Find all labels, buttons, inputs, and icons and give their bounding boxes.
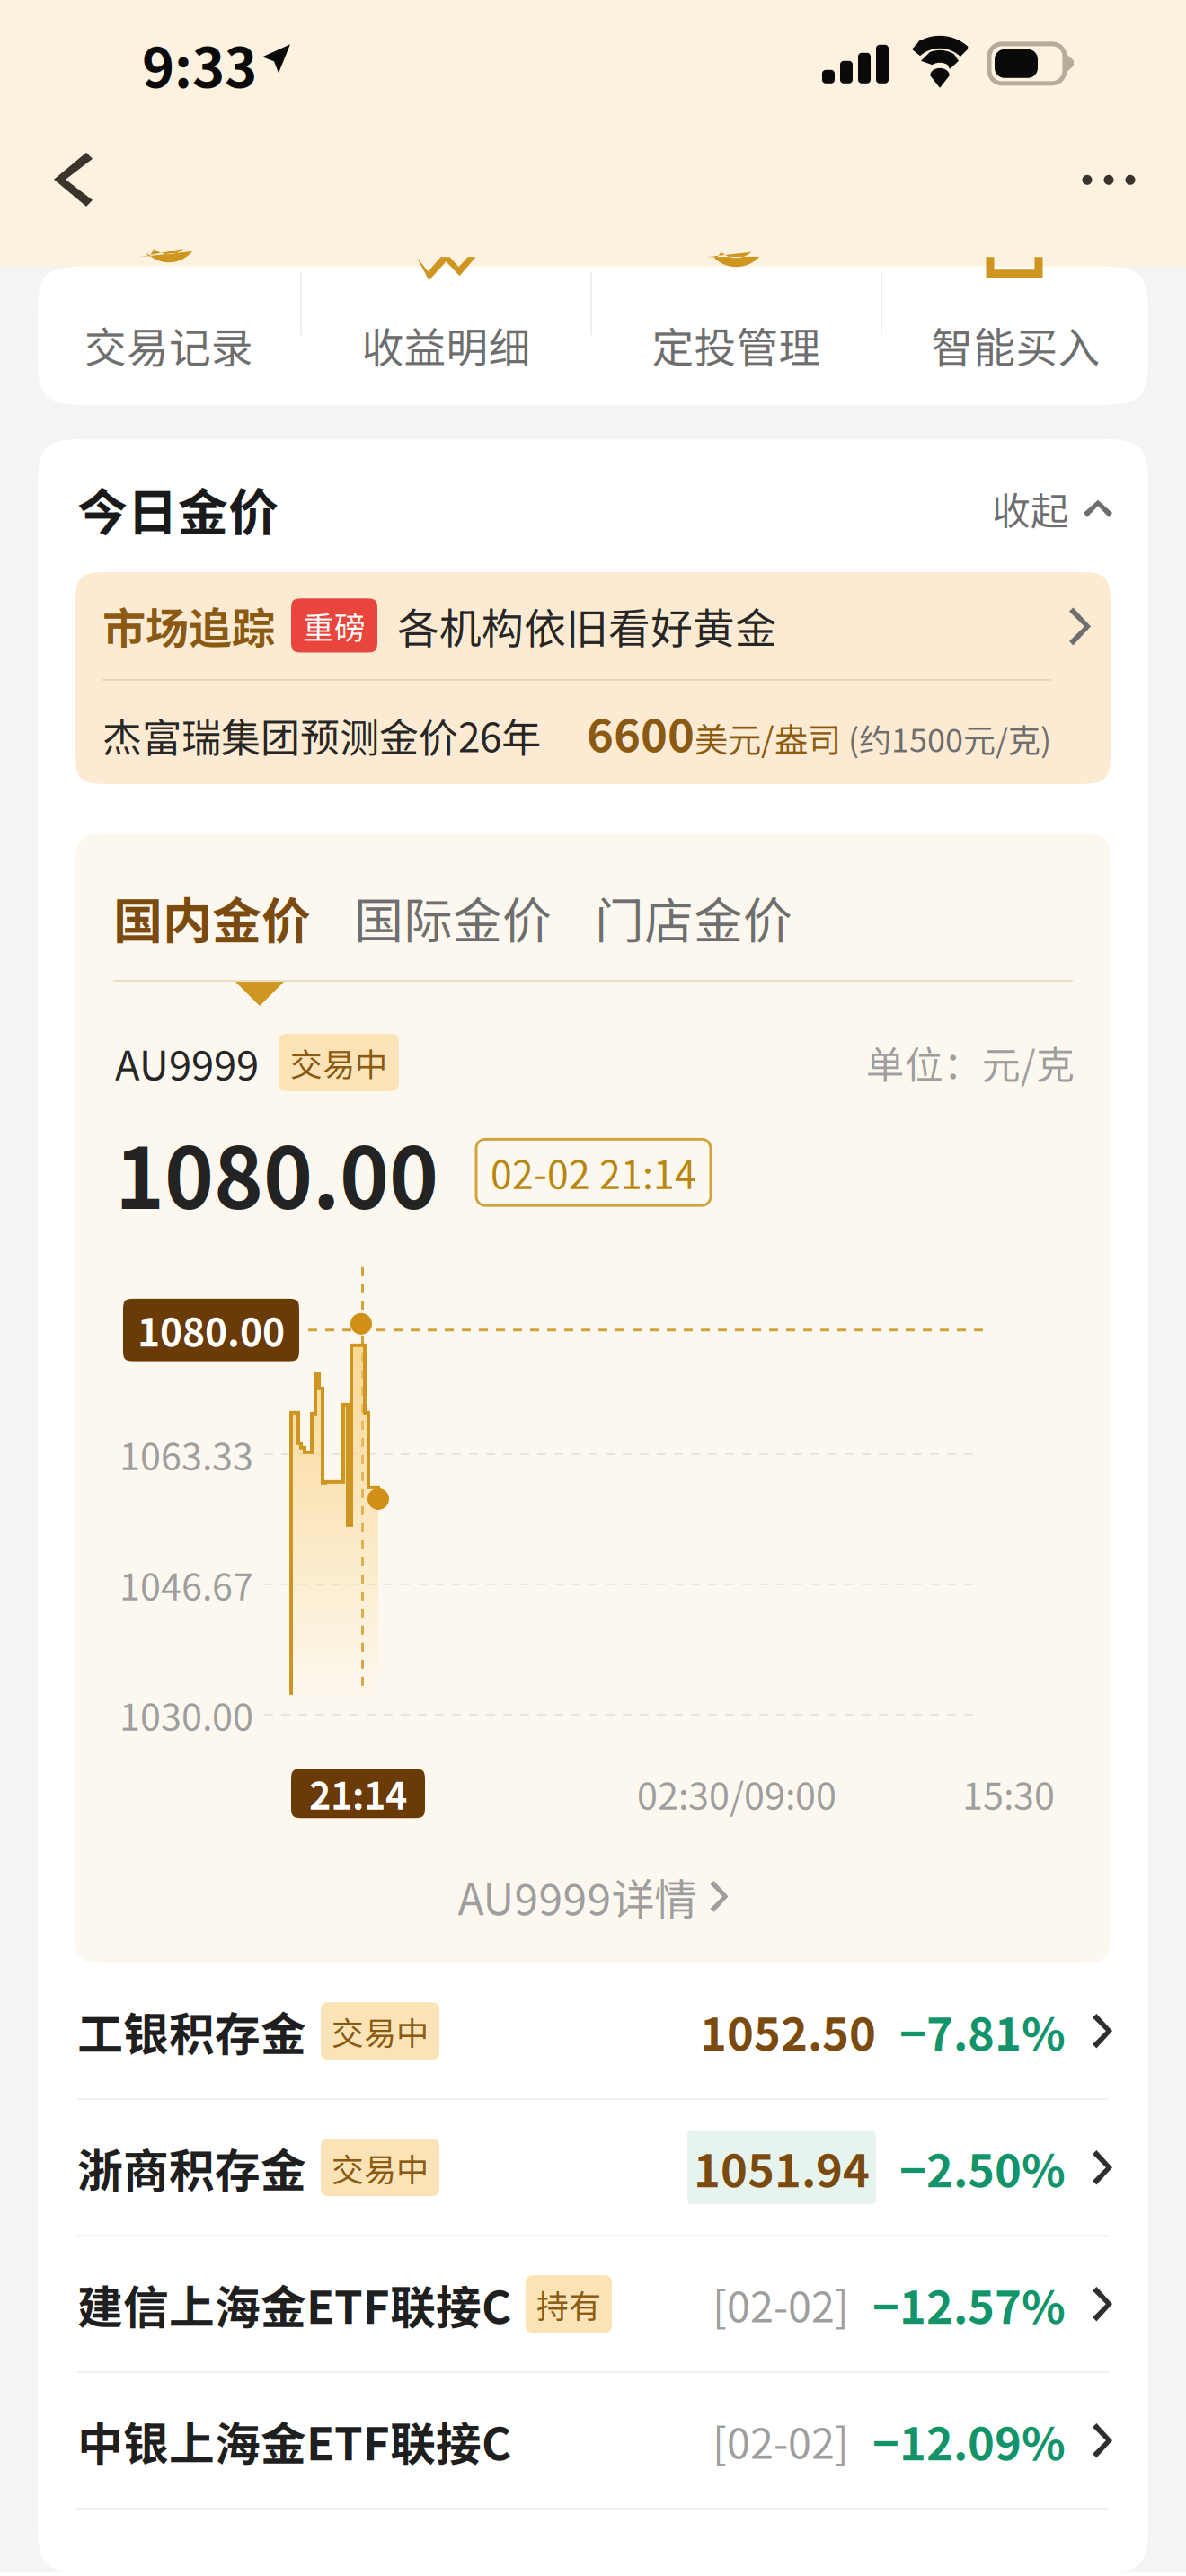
- staticText: 收益明细: [362, 315, 531, 375]
- staticText: 1063.33: [119, 1427, 253, 1481]
- staticText: 15:30: [962, 1767, 1055, 1820]
- staticText: −2.50%: [899, 2135, 1066, 2200]
- button[interactable]: 市场追踪: [75, 572, 1111, 784]
- button[interactable]: 智能买入: [882, 257, 1149, 375]
- staticText: 交易中: [332, 2008, 429, 2054]
- staticText: 收起: [992, 481, 1069, 536]
- staticText: 9:33: [142, 24, 257, 103]
- staticText: [02-02]: [712, 2274, 849, 2334]
- staticText: 1080.00: [115, 1112, 438, 1233]
- staticText: 各机构依旧看好黄金: [397, 595, 777, 656]
- staticText: [02-02]: [712, 2410, 849, 2471]
- staticText: 1030.00: [119, 1688, 253, 1741]
- button[interactable]: AU9999详情: [75, 1820, 1111, 1964]
- staticText: 1052.50: [700, 1998, 876, 2064]
- button[interactable]: 建信上海金ETF联接C: [38, 2237, 1148, 2371]
- button[interactable]: 定投管理: [592, 257, 881, 375]
- staticText: 今日金价: [77, 472, 279, 545]
- staticText: (约1500元/克): [841, 715, 1051, 761]
- staticText: 智能买入: [931, 315, 1100, 375]
- staticText: −12.09%: [872, 2408, 1066, 2474]
- staticText: 交易中: [290, 1039, 387, 1086]
- staticText: 交易记录: [84, 315, 253, 375]
- staticText: 持有: [536, 2281, 601, 2327]
- staticText: 门店金价: [595, 882, 792, 953]
- staticText: 1080.00: [137, 1302, 285, 1358]
- button[interactable]: More: [1046, 131, 1186, 229]
- staticText: 重磅: [303, 603, 366, 648]
- button[interactable]: 国内金价: [113, 882, 332, 953]
- button[interactable]: 收起: [992, 481, 1112, 536]
- staticText: 02-02 21:14: [491, 1145, 696, 1200]
- staticText: 02:30/09:00: [637, 1767, 836, 1820]
- staticText: AU9999详情: [458, 1865, 698, 1928]
- staticText: 交易中: [332, 2144, 429, 2191]
- staticText: 6600: [587, 699, 695, 765]
- staticText: −12.57%: [872, 2271, 1066, 2337]
- staticText: 国内金价: [113, 882, 311, 953]
- button[interactable]: 浙商积存金: [38, 2100, 1148, 2235]
- staticText: 单位：元/克: [866, 1035, 1075, 1090]
- button[interactable]: 中银上海金ETF联接C: [38, 2373, 1148, 2508]
- staticText: AU9999: [115, 1033, 259, 1092]
- staticText: 21:14: [309, 1767, 407, 1820]
- staticText: 市场追踪: [102, 594, 275, 657]
- staticText: 定投管理: [652, 315, 821, 375]
- staticText: 1051.94: [694, 2135, 870, 2200]
- button[interactable]: Back: [0, 131, 140, 229]
- button[interactable]: 交易记录: [38, 257, 300, 375]
- staticText: 建信上海金ETF联接C: [77, 2271, 511, 2337]
- button[interactable]: 国际金价: [332, 882, 573, 953]
- staticText: 杰富瑞集团预测金价26年: [102, 706, 541, 764]
- staticText: 中银上海金ETF联接C: [77, 2408, 511, 2474]
- staticText: 1046.67: [119, 1557, 253, 1611]
- staticText: −7.81%: [899, 1998, 1066, 2064]
- staticText: 浙商积存金: [77, 2135, 306, 2200]
- button[interactable]: 门店金价: [573, 882, 814, 953]
- staticText: 美元/盎司: [695, 713, 841, 762]
- staticText: 国际金价: [354, 882, 552, 953]
- button[interactable]: 工银积存金: [38, 1964, 1148, 2098]
- button[interactable]: 收益明细: [302, 257, 590, 375]
- staticText: 工银积存金: [77, 1998, 306, 2064]
